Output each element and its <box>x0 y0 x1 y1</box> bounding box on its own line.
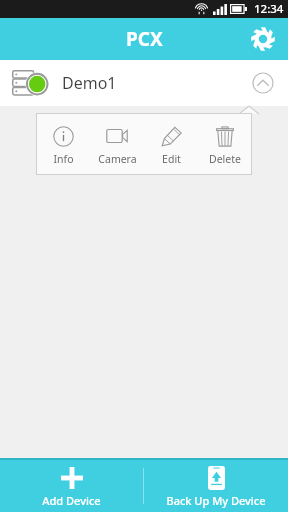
button[interactable]: Info <box>36 113 90 175</box>
button[interactable]: Collapse <box>250 70 276 96</box>
staticText: 12:34 <box>254 1 284 17</box>
button[interactable]: Edit <box>144 113 198 175</box>
staticText: Back Up My Device <box>166 493 266 508</box>
button[interactable]: Camera <box>90 113 144 175</box>
staticText: PCX <box>126 26 163 52</box>
button[interactable]: Back Up My Device <box>144 460 288 512</box>
staticText: Camera <box>98 152 137 166</box>
staticText: Info <box>53 152 74 166</box>
button[interactable]: Delete <box>198 113 252 175</box>
staticText: Delete <box>209 152 241 166</box>
button[interactable]: Demo1 <box>0 60 288 106</box>
button[interactable]: Settings <box>246 22 280 56</box>
staticText: Edit <box>162 152 181 166</box>
button[interactable]: Add Device <box>0 460 143 512</box>
staticText: Add Device <box>42 493 101 508</box>
staticText: Demo1 <box>62 72 117 94</box>
